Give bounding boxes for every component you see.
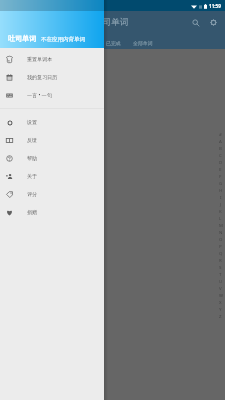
staticText: H: [219, 187, 223, 193]
staticText: M: [219, 222, 223, 228]
staticText: 吐司单词: [94, 17, 129, 28]
staticText: 帮助: [27, 155, 38, 161]
staticText: 吐司单词: [8, 34, 36, 43]
staticText: D: [219, 159, 223, 165]
button[interactable]: 吐司单词: [0, 0, 104, 48]
button[interactable]: 重置单词本: [0, 50, 104, 68]
button[interactable]: Settings: [209, 18, 218, 27]
staticText: E: [219, 166, 222, 172]
staticText: 设置: [27, 119, 38, 125]
button[interactable]: 未完成: [73, 38, 100, 48]
staticText: 未完成: [79, 40, 94, 46]
staticText: O: [219, 236, 223, 242]
staticText: Z: [219, 313, 222, 319]
staticText: S: [219, 264, 222, 270]
staticText: A: [219, 138, 222, 144]
staticText: I: [220, 194, 222, 200]
staticText: Y: [219, 306, 222, 312]
staticText: J: [220, 201, 222, 207]
staticText: 反馈: [27, 137, 38, 143]
staticText: W: [219, 292, 223, 298]
staticText: F: [219, 173, 222, 179]
staticText: #: [219, 131, 222, 137]
button[interactable]: 全部单词: [127, 38, 159, 48]
button[interactable]: 捐赠: [0, 203, 104, 221]
staticText: 捐赠: [27, 209, 38, 215]
staticText: 不在应用内背单词: [41, 36, 85, 43]
staticText: 一言 • 一句: [27, 92, 52, 99]
staticText: R: [219, 257, 222, 263]
staticText: T: [219, 271, 222, 277]
staticText: 我的复习日历: [27, 74, 58, 80]
staticText: V: [219, 285, 222, 291]
staticText: P: [219, 243, 222, 249]
button[interactable]: 帮助: [0, 149, 104, 167]
staticText: N: [219, 229, 223, 235]
button[interactable]: 我的复习日历: [0, 68, 104, 86]
button[interactable]: 设置: [0, 113, 104, 131]
staticText: Q: [219, 250, 223, 256]
button[interactable]: 评分: [0, 185, 104, 203]
staticText: G: [219, 180, 223, 186]
button[interactable]: Search: [191, 18, 200, 27]
button[interactable]: 关于: [0, 167, 104, 185]
staticText: X: [219, 299, 222, 305]
staticText: B: [219, 145, 222, 151]
staticText: C: [219, 152, 222, 158]
staticText: L: [219, 215, 222, 221]
staticText: 全部单词: [133, 40, 153, 46]
staticText: 关于: [27, 173, 38, 179]
button[interactable]: 反馈: [0, 131, 104, 149]
staticText: 已完成: [106, 40, 121, 46]
staticText: 11:59: [209, 3, 221, 9]
staticText: 重置单词本: [27, 56, 53, 62]
staticText: K: [219, 208, 222, 214]
staticText: 评分: [27, 191, 38, 197]
staticText: U: [219, 278, 223, 284]
button[interactable]: 一言 • 一句: [0, 86, 104, 104]
button[interactable]: 已完成: [100, 38, 127, 48]
